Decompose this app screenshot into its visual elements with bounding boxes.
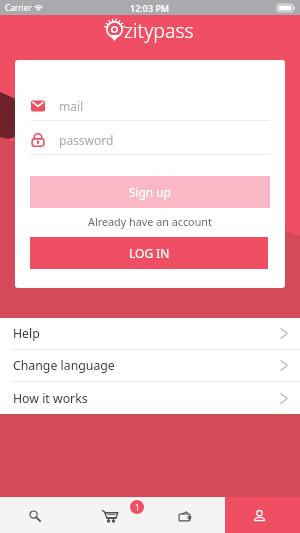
staticText: Help [13,325,40,342]
staticText: Change language [13,357,115,374]
staticText: password [59,132,114,148]
staticText: Sign up [129,184,171,200]
button[interactable]: Sign up [30,176,270,208]
button[interactable]: How it works [0,382,300,414]
staticText: mail [59,98,84,114]
staticText: How it works [13,390,88,407]
button[interactable]: Change language [0,350,300,382]
staticText: zitypass [124,17,194,44]
staticText: 12:03 PM [130,2,170,14]
staticText: Carrier [5,2,32,13]
button[interactable]: Search [0,497,75,533]
button[interactable]: LOG IN [30,237,268,269]
staticText: LOG IN [129,245,170,261]
staticText: 1 [135,502,140,513]
button[interactable]: Wallet [150,497,225,533]
button[interactable]: Profile [225,497,300,533]
button[interactable]: Help [0,318,300,350]
button[interactable]: Cart [75,497,150,533]
staticText: Already have an account [88,214,212,229]
